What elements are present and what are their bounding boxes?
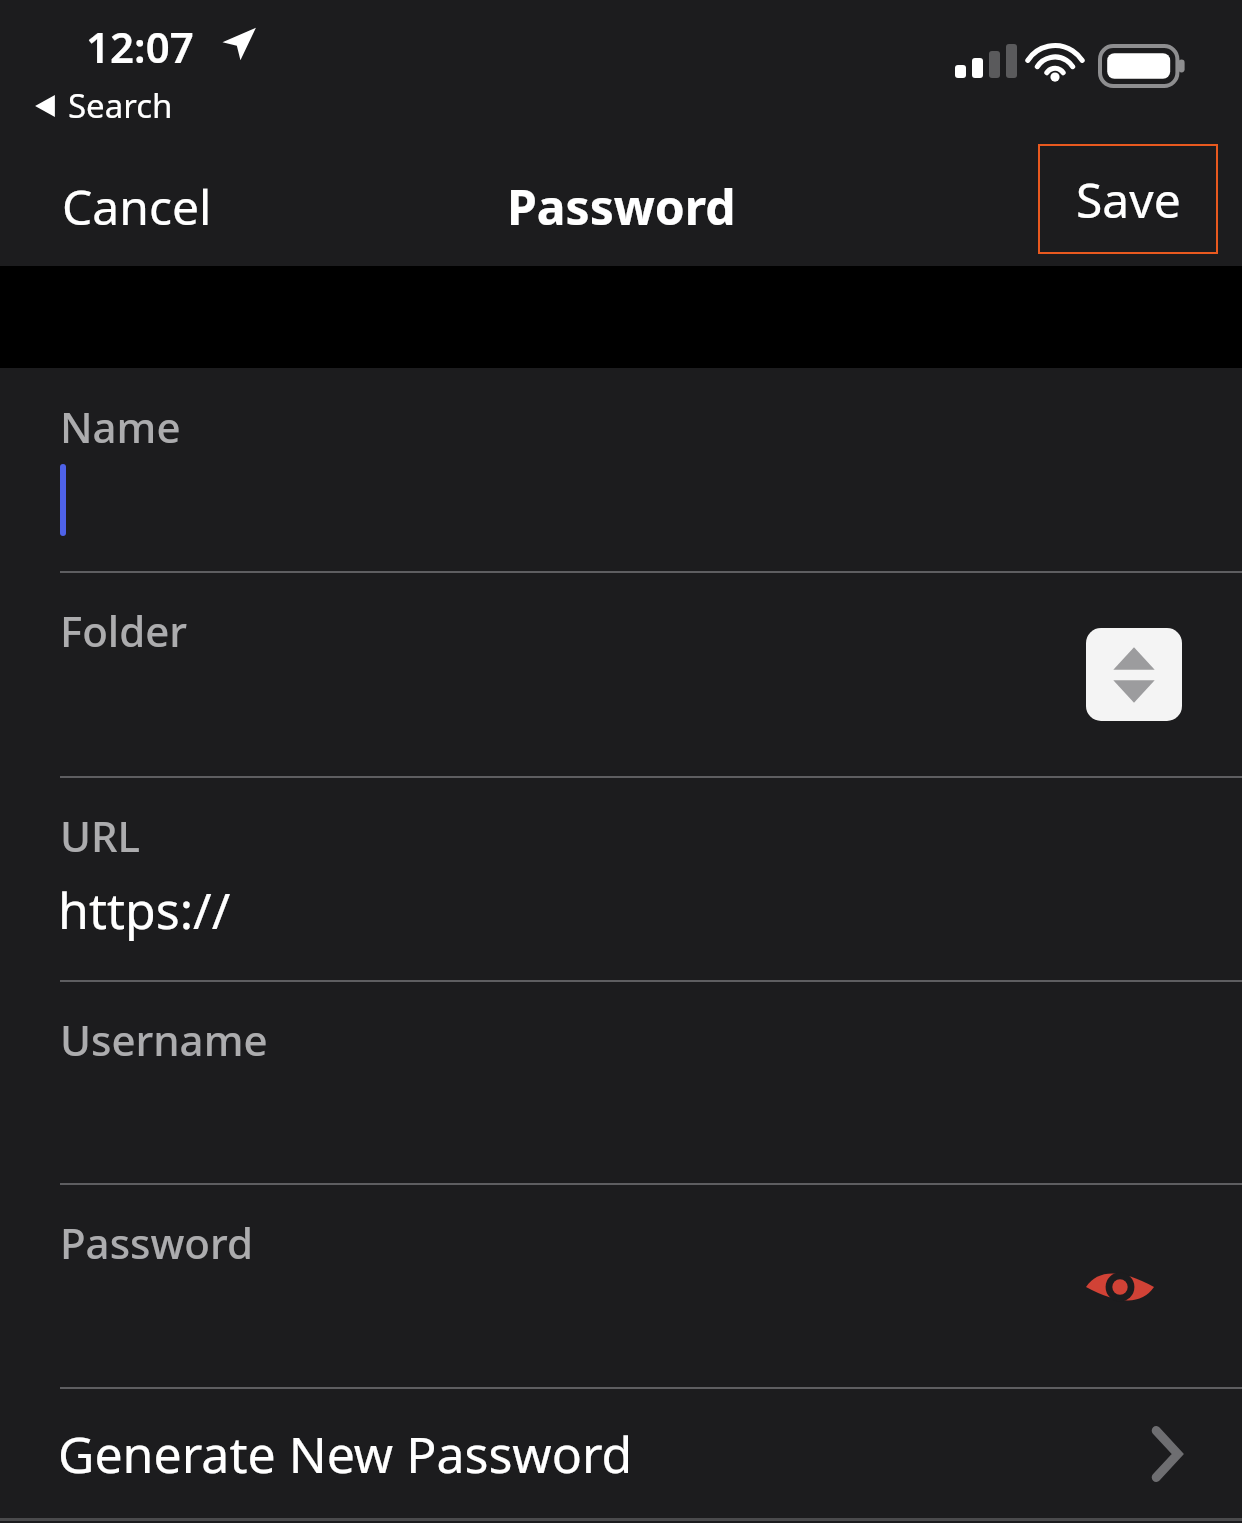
button[interactable]: Show password [1076,1255,1164,1319]
staticText: Username [60,1011,268,1068]
staticText: Password [507,174,736,239]
staticText: Password [60,1214,253,1271]
staticText: Search [68,83,173,128]
button[interactable]: Cancel [46,160,228,253]
staticText: Save [1076,167,1181,232]
staticText: Name [60,398,181,455]
staticText: Cancel [62,174,212,239]
staticText: URL [60,807,140,864]
staticText: https:// [58,876,231,944]
staticText: 12:07 [86,18,194,75]
staticText: Generate New Password [58,1420,633,1488]
button[interactable]: Save [1038,144,1218,254]
button[interactable]: Generate New Password [0,1389,1242,1518]
button[interactable]: Choose folder [1086,628,1182,721]
staticText: Folder [60,602,188,659]
button[interactable]: Search [30,80,177,131]
